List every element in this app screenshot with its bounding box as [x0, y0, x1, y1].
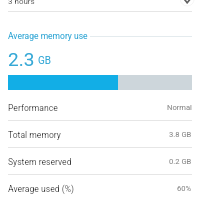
staticText: 3 hours [8, 0, 35, 6]
staticText: Total memory [8, 130, 61, 140]
button[interactable]: Performance [0, 94, 200, 121]
button[interactable]: System reserved [0, 148, 200, 175]
staticText: 3.8 GB [169, 130, 192, 139]
staticText: GB [38, 55, 52, 67]
staticText: 2.3 [8, 48, 35, 70]
staticText: Performance [8, 103, 58, 113]
button[interactable]: Expand time range [172, 0, 200, 14]
staticText: 0.2 GB [169, 157, 192, 166]
staticText: 60% [177, 184, 192, 193]
button[interactable]: 3 hours [0, 0, 200, 12]
staticText: System reserved [8, 157, 72, 167]
button[interactable]: Average used (%) [0, 175, 200, 200]
staticText: Average memory use [8, 31, 88, 41]
button[interactable]: Total memory [0, 121, 200, 148]
staticText: Average used (%) [8, 184, 74, 194]
staticText: Normal [167, 103, 192, 112]
